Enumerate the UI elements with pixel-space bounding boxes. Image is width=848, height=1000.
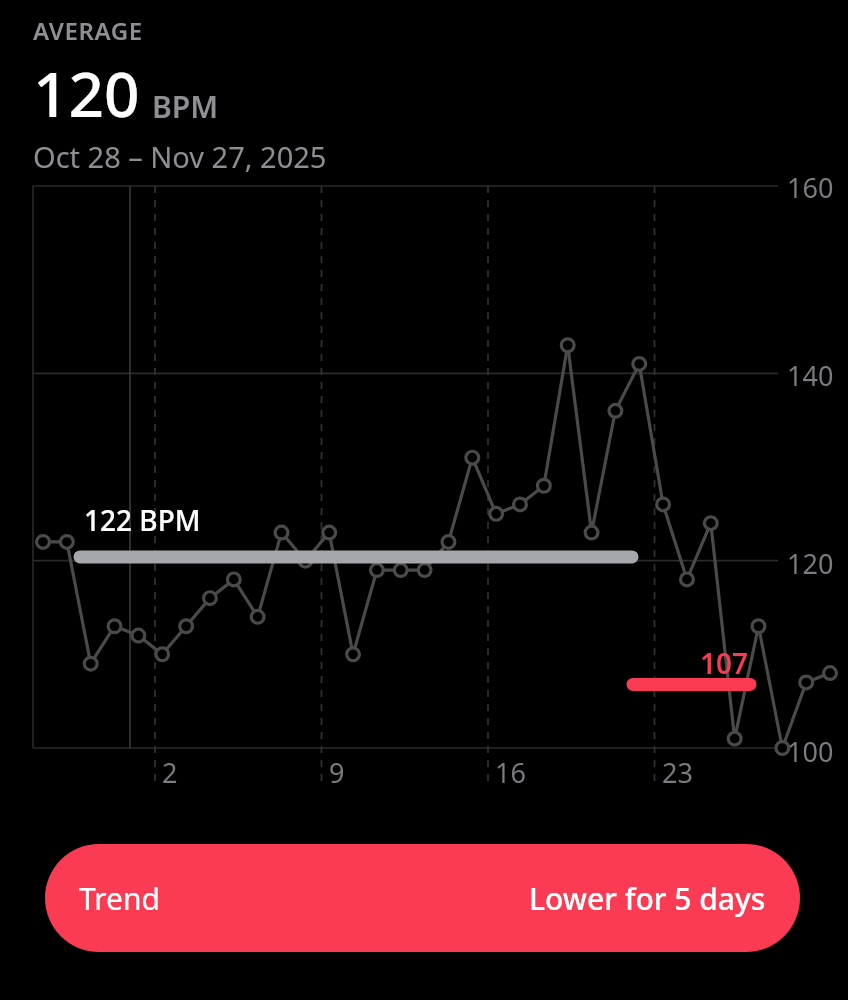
staticText: Lower for 5 days [529,878,766,919]
staticText: BPM [152,86,219,127]
staticText: AVERAGE [33,14,143,47]
staticText: 2 [162,754,178,791]
staticText: 140 [787,357,834,394]
staticText: 100 [787,733,834,770]
staticText: 122 BPM [84,501,201,539]
staticText: 16 [495,754,526,791]
button[interactable]: Trend [45,844,800,952]
staticText: 120 [787,545,834,582]
staticText: 160 [787,169,834,206]
staticText: 120 [33,51,140,135]
staticText: 9 [329,754,345,791]
staticText: 107 [700,644,749,682]
staticText: Trend [79,878,160,919]
staticText: 23 [662,754,693,791]
staticText: Oct 28 – Nov 27, 2025 [33,137,327,176]
